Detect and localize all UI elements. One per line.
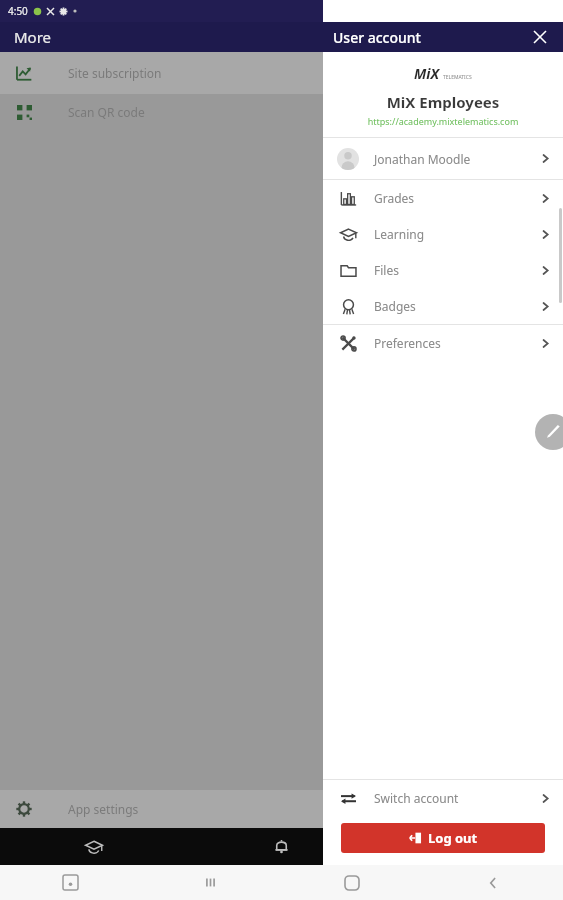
staticText: App settings <box>68 801 139 817</box>
staticText: Files <box>374 262 399 278</box>
staticText: Log out <box>428 829 478 847</box>
button[interactable]: Home <box>281 865 422 900</box>
staticText: MiX <box>414 64 440 83</box>
button[interactable]: Learning <box>323 216 563 252</box>
staticText: TELEMATICS <box>443 74 472 81</box>
staticText: Switch account <box>374 790 459 806</box>
staticText: Scan QR code <box>68 104 145 120</box>
button[interactable]: Badges <box>323 288 563 324</box>
button[interactable]: Back <box>422 865 563 900</box>
staticText: Preferences <box>374 335 441 351</box>
staticText: 4:50 <box>8 4 28 18</box>
button[interactable]: Close <box>527 24 553 50</box>
staticText: More <box>14 27 52 47</box>
button[interactable]: Screenshot <box>0 865 140 900</box>
staticText: https://academy.mixtelematics.com <box>323 115 563 127</box>
button[interactable]: Calendar <box>375 828 563 865</box>
staticText: Grades <box>374 190 415 206</box>
button[interactable]: Files <box>323 252 563 288</box>
button[interactable]: Switch account <box>323 780 563 816</box>
button[interactable]: Log out <box>341 823 545 853</box>
button[interactable]: Jonathan Moodle <box>323 138 563 179</box>
staticText: MiX Employees <box>323 92 563 112</box>
staticText: Site subscription <box>68 65 162 81</box>
staticText: Badges <box>374 298 416 314</box>
staticText: User account <box>333 28 421 47</box>
button[interactable]: Site subscription <box>0 52 563 94</box>
button[interactable]: Grades <box>323 180 563 216</box>
button[interactable]: Notifications <box>187 828 375 865</box>
button[interactable]: Edit <box>535 414 563 450</box>
button[interactable]: App settings <box>0 790 563 828</box>
staticText: Learning <box>374 226 425 242</box>
button[interactable]: Scan QR code <box>0 94 563 130</box>
button[interactable]: Preferences <box>323 325 563 361</box>
button[interactable]: Recents <box>140 865 281 900</box>
button[interactable]: Learning <box>0 828 187 865</box>
staticText: Jonathan Moodle <box>374 151 471 167</box>
